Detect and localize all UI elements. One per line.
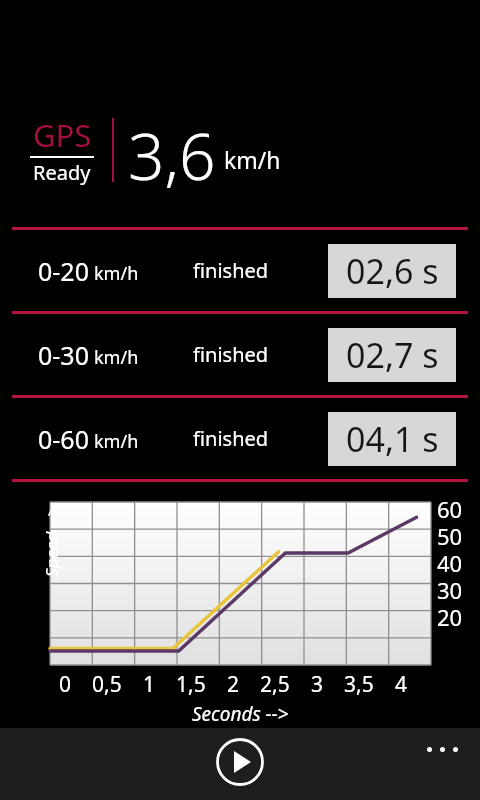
staticText: Seconds --> [192, 701, 289, 727]
button[interactable]: More options [418, 734, 466, 764]
staticText: 0 [59, 670, 72, 699]
staticText: 20 [437, 602, 463, 629]
staticText: 50 [437, 521, 463, 548]
staticText: km/h [94, 261, 139, 286]
staticText: 02,7 s [346, 332, 439, 378]
button[interactable]: 0-30 [0, 314, 480, 395]
staticText: 4 [395, 670, 408, 699]
staticText: 1 [143, 670, 156, 699]
staticText: 3,5 [344, 670, 374, 699]
staticText: 02,6 s [346, 248, 439, 294]
staticText: 0,5 [92, 670, 122, 699]
staticText: finished [193, 425, 269, 452]
staticText: 0-20 [38, 254, 89, 288]
staticText: km/h [224, 144, 281, 175]
staticText: 3,6 [128, 112, 216, 188]
staticText: 0-60 [38, 422, 89, 456]
button[interactable]: 0-60 [0, 398, 480, 479]
staticText: finished [193, 341, 269, 368]
staticText: Speed --> [40, 506, 63, 577]
staticText: 30 [437, 575, 463, 602]
button[interactable]: Start measurement [212, 734, 268, 790]
staticText: GPS [33, 114, 92, 156]
button[interactable]: 0-20 [0, 230, 480, 311]
staticText: 60 [437, 494, 463, 521]
staticText: 3 [311, 670, 324, 699]
staticText: 2,5 [260, 670, 290, 699]
staticText: 40 [437, 548, 463, 575]
staticText: 2 [227, 670, 240, 699]
staticText: 0-30 [38, 338, 89, 372]
staticText: finished [193, 257, 269, 284]
staticText: 1,5 [176, 670, 206, 699]
staticText: 04,1 s [346, 416, 439, 462]
staticText: km/h [94, 429, 139, 454]
staticText: km/h [94, 345, 139, 370]
staticText: Ready [33, 159, 91, 186]
